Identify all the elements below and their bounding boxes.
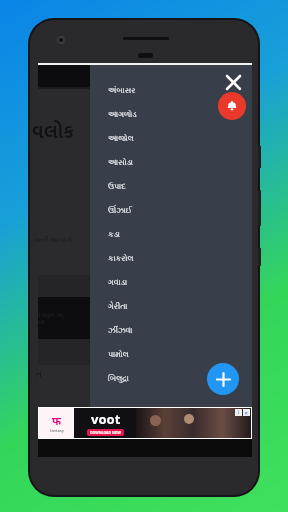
button[interactable]: ઉપાદ xyxy=(90,175,252,199)
staticText: ગવાડા xyxy=(108,279,128,287)
button[interactable]: આજોલ xyxy=(90,127,252,151)
staticText: फ xyxy=(52,413,62,428)
button[interactable]: કડા xyxy=(90,223,252,247)
button[interactable]: Advertisement xyxy=(39,408,251,438)
staticText: કડા xyxy=(108,231,120,239)
button[interactable]: ગેરીતા xyxy=(90,295,252,319)
staticText: વલોક xyxy=(32,117,74,149)
staticText: i xyxy=(238,409,240,416)
staticText: પામોલ xyxy=(108,351,129,359)
staticText: અંબાસર xyxy=(108,87,136,95)
staticText: ✕ xyxy=(244,410,249,416)
staticText: આસોડા xyxy=(108,159,134,167)
staticText: બિલુદ્રા xyxy=(108,375,129,383)
button[interactable]: આગળોડ xyxy=(90,103,252,127)
staticText: તેમની આત્મા ને xyxy=(34,236,72,244)
button[interactable]: અંબાસર xyxy=(90,79,252,103)
staticText: ગેરીતા xyxy=(108,303,128,311)
button[interactable]: કાકરોલ xyxy=(90,247,252,271)
staticText: ને વધુમાં વધુ xyxy=(36,311,64,319)
button[interactable]: બિલુદ્રા xyxy=(90,367,252,391)
button[interactable]: ઝીંઝવા xyxy=(90,319,252,343)
staticText: ત xyxy=(36,371,42,380)
staticText: ઝીંઝવા xyxy=(108,327,133,335)
button[interactable]: Close xyxy=(222,71,244,93)
button[interactable]: ગવાડા xyxy=(90,271,252,295)
staticText: voot xyxy=(91,410,121,428)
staticText: fantasy xyxy=(50,428,64,433)
button[interactable]: Notifications xyxy=(218,92,246,120)
button[interactable]: પામોલ xyxy=(90,343,252,367)
staticText: DOWNLOAD NOW xyxy=(90,430,121,435)
button[interactable]: આસોડા xyxy=(90,151,252,175)
button[interactable]: ઊંઝાઈ xyxy=(90,199,252,223)
staticText: ઉપાદ xyxy=(108,183,126,191)
staticText: ક્રમ xyxy=(36,319,45,325)
staticText: આગળોડ xyxy=(108,111,137,119)
staticText: આજોલ xyxy=(108,135,134,143)
button[interactable]: Add xyxy=(207,363,239,395)
staticText: ઊંઝાઈ xyxy=(108,207,133,215)
staticText: કાકરોલ xyxy=(108,255,134,263)
